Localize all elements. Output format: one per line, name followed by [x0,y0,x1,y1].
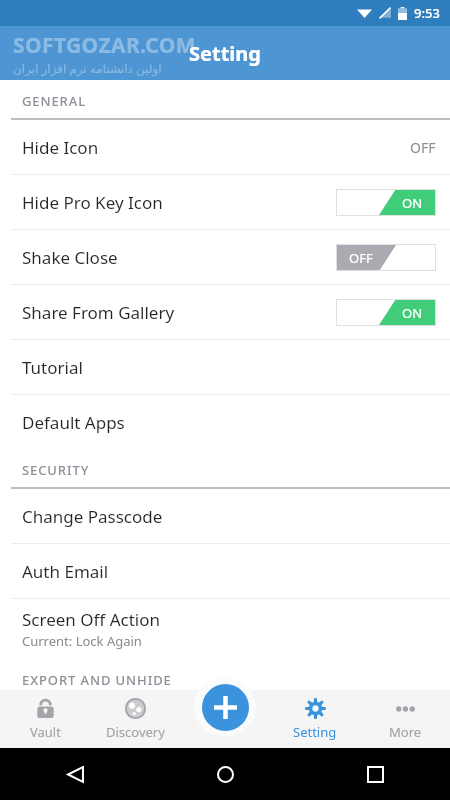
button[interactable]: Setting [270,690,360,748]
staticText: ON [402,194,423,212]
button[interactable]: Default Apps [0,395,450,449]
staticText: OFF [349,249,373,267]
staticText: More [389,723,422,741]
staticText: Change Passcode [22,505,163,528]
staticText: Vault [30,723,61,741]
button[interactable]: Auth Email [0,544,450,598]
staticText: Auth Email [22,560,109,583]
staticText: Hide Pro Key Icon [22,191,163,214]
staticText: اولین دانشنامه نرم افزار ایران [13,60,162,76]
staticText: SOFTGOZAR.COM [13,31,197,60]
button[interactable]: More [360,690,450,748]
staticText: SECURITY [22,461,90,479]
staticText: 9:53 [414,4,440,22]
staticText: OFF [410,138,436,157]
button[interactable]: Vault [0,690,90,748]
staticText: Hide Icon [22,136,99,159]
staticText: Setting [293,723,337,741]
button[interactable]: Switch on [336,189,436,216]
button[interactable]: Switch on [336,299,436,326]
staticText: Share From Gallery [22,301,175,324]
button[interactable]: Hide Pro Key Icon [0,175,450,229]
button[interactable]: Discovery [90,690,180,748]
staticText: EXPORT AND UNHIDE [22,671,172,689]
staticText: Tutorial [22,356,83,379]
staticText: Discovery [106,723,165,741]
staticText: ON [402,304,423,322]
button[interactable]: Add [202,684,249,731]
button[interactable]: Tutorial [0,340,450,394]
button[interactable]: Change Passcode [0,489,450,543]
button[interactable]: Shake Close [0,230,450,284]
button[interactable]: Switch off [336,244,436,271]
staticText: Default Apps [22,411,125,434]
button[interactable]: Share From Gallery [0,285,450,339]
button[interactable]: Screen Off Action [0,599,450,659]
staticText: Shake Close [22,246,118,269]
staticText: Setting [189,40,261,67]
staticText: Current: Lock Again [22,632,142,650]
staticText: Screen Off Action [22,608,161,631]
button[interactable]: Hide Icon [0,120,450,174]
staticText: GENERAL [22,92,86,110]
